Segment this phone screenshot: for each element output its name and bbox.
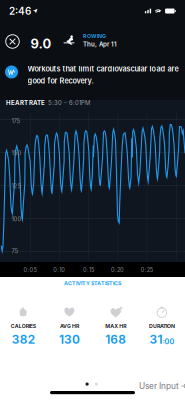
staticText: DURATION [149, 323, 175, 329]
staticText: 168 [105, 332, 126, 346]
staticText: 130 [59, 332, 80, 346]
staticText: HEART RATE [6, 99, 45, 106]
staticText: 5:30 - 6:01PM [48, 99, 90, 106]
staticText: 175 [11, 117, 20, 125]
staticText: 2:46 [9, 5, 31, 17]
staticText: 0:20 [111, 266, 124, 273]
button[interactable]: Close workout [0, 29, 24, 53]
staticText: 0:25 [141, 266, 153, 273]
staticText: 0:05 [23, 266, 36, 273]
staticText: MAX HR [105, 323, 126, 329]
staticText: AVG HR [60, 323, 79, 329]
staticText: 125 [11, 182, 21, 190]
staticText: :00 [162, 337, 174, 346]
staticText: 0:15 [83, 266, 94, 273]
staticText: 382 [12, 332, 35, 346]
staticText: 31 [149, 332, 162, 346]
staticText: 100 [11, 215, 21, 223]
staticText: Workouts that limit cardiovascular load … [27, 64, 178, 85]
staticText: 9.0 [30, 36, 51, 52]
staticText: CALORIES [11, 323, 36, 329]
staticText: 150 [11, 149, 21, 157]
staticText: 0:10 [53, 266, 65, 273]
staticText: ROWING [83, 33, 106, 39]
staticText: Thu, Apr 11 [83, 41, 117, 48]
staticText: User Input [139, 381, 179, 391]
staticText: ACTIVITY STATISTICS [64, 280, 121, 286]
staticText: 75 [11, 247, 18, 255]
button[interactable]: User Input [136, 378, 185, 394]
